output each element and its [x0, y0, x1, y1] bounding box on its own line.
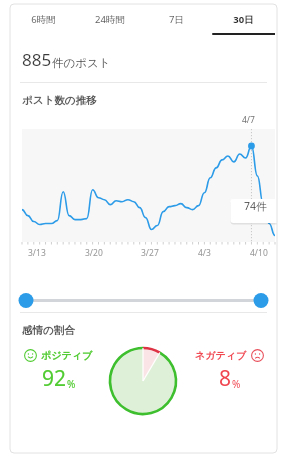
staticText: %	[67, 377, 76, 391]
staticText: 24時間	[95, 13, 125, 26]
staticText: 3/27	[141, 247, 159, 259]
button[interactable]: 7日	[143, 4, 210, 35]
button[interactable]: 6時間	[10, 4, 76, 35]
staticText: %	[232, 377, 241, 391]
staticText: 30日	[233, 13, 254, 26]
staticText: 7日	[169, 13, 184, 26]
staticText: 3/20	[85, 247, 103, 259]
button[interactable]: Positive	[24, 349, 93, 393]
staticText: 感情の割合	[22, 324, 75, 337]
staticText: 8	[219, 364, 232, 393]
button[interactable]: ネガティブ	[195, 349, 264, 393]
staticText: 74件	[244, 199, 267, 213]
other: Positive	[24, 349, 37, 362]
staticText: ポジティブ	[41, 349, 93, 362]
staticText: 4/7	[242, 114, 255, 126]
button[interactable]: 24時間	[76, 4, 143, 35]
staticText: 3/13	[28, 247, 46, 259]
staticText: 885	[22, 48, 52, 71]
staticText: 4/3	[198, 247, 211, 259]
button[interactable]: Range end	[253, 294, 269, 310]
staticText: ネガティブ	[195, 349, 247, 362]
button[interactable]: Range start	[18, 294, 34, 310]
staticText: 92	[42, 364, 67, 393]
other: Negative	[251, 349, 264, 362]
staticText: 6時間	[31, 13, 56, 26]
button[interactable]: 30日	[210, 4, 277, 35]
staticText: 4/10	[250, 247, 268, 259]
staticText: ポスト数の推移	[22, 94, 97, 107]
staticText: 件のポスト	[52, 56, 111, 70]
